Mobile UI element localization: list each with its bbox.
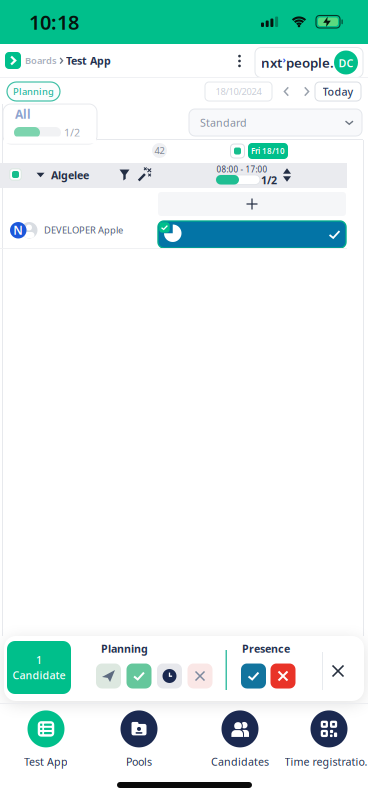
staticText: Standard xyxy=(200,115,247,130)
staticText: 10:18 xyxy=(29,9,79,35)
button[interactable]: All xyxy=(3,104,97,144)
staticText: Presence xyxy=(242,641,290,656)
staticText: Planning xyxy=(101,641,148,656)
button[interactable]: Absent xyxy=(270,663,295,688)
staticText: Test App xyxy=(24,754,68,769)
button[interactable]: Pools xyxy=(99,708,179,770)
button[interactable]: More options xyxy=(231,51,247,71)
button[interactable]: Fri 18/10 xyxy=(248,143,288,159)
staticText: 1 xyxy=(36,653,42,667)
button[interactable]: Test App xyxy=(6,708,86,770)
button[interactable]: Select day xyxy=(230,144,244,158)
button[interactable]: 1 xyxy=(7,641,71,694)
button[interactable]: Pending planning xyxy=(157,663,182,688)
button[interactable]: Candidates xyxy=(200,708,280,770)
button[interactable]: Decline planning xyxy=(187,663,212,688)
button[interactable]: Close xyxy=(332,665,343,676)
staticText: › xyxy=(282,53,285,66)
button[interactable]: Next day xyxy=(303,87,310,96)
staticText: N xyxy=(13,222,23,238)
button[interactable]: 18/10/2024 xyxy=(205,82,272,101)
button[interactable]: Present xyxy=(241,663,266,688)
staticText: Boards xyxy=(25,54,57,67)
button[interactable]: Today xyxy=(315,82,361,101)
button[interactable]: Accept planning xyxy=(126,663,151,688)
staticText: DEVELOPER Apple xyxy=(44,224,123,236)
staticText: Pools xyxy=(126,754,152,769)
staticText: Test App xyxy=(66,53,111,68)
staticText: 08:00 - 17:00 xyxy=(216,164,267,175)
button[interactable]: Sort xyxy=(282,167,292,183)
staticText: Today xyxy=(322,84,353,99)
button[interactable]: nxt people account xyxy=(255,47,363,77)
staticText: Algelee xyxy=(51,168,89,182)
staticText: nxt xyxy=(261,54,282,71)
staticText: 18/10/2024 xyxy=(215,85,261,98)
staticText: Time registratio... xyxy=(284,754,368,769)
button[interactable]: Send planning xyxy=(96,663,121,688)
staticText: 1/2 xyxy=(261,173,277,187)
staticText: 1/2 xyxy=(64,125,80,140)
staticText: All xyxy=(15,106,31,122)
staticText: Candidate xyxy=(12,668,65,682)
staticText: Fri 18/10 xyxy=(251,146,285,156)
button[interactable]: Select group xyxy=(10,169,21,180)
staticText: Candidates xyxy=(211,754,269,769)
button[interactable]: Planned shift DEVELOPER Apple xyxy=(158,221,346,248)
staticText: Planning xyxy=(13,85,54,98)
button[interactable]: Auto plan xyxy=(137,167,152,181)
button[interactable]: Filter xyxy=(119,169,129,180)
button[interactable]: Add shift xyxy=(158,192,346,216)
button[interactable]: Expand group xyxy=(36,173,44,177)
button[interactable]: Standard xyxy=(189,109,362,136)
button[interactable]: Previous day xyxy=(283,87,290,96)
button[interactable]: Time registratio... xyxy=(282,708,368,770)
button[interactable]: Planning xyxy=(7,82,60,101)
button[interactable]: Back to Boards xyxy=(5,52,21,69)
staticText: DC xyxy=(338,56,353,70)
staticText: people. xyxy=(286,54,334,71)
staticText: 42 xyxy=(154,144,164,157)
